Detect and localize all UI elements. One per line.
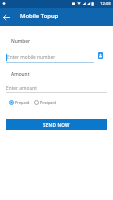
button[interactable]: Prepaid [6, 98, 32, 107]
staticText: SEND NOW [43, 122, 70, 128]
button[interactable]: Postpaid [33, 98, 57, 107]
button[interactable]: SEND NOW [6, 119, 107, 130]
staticText: Prepaid [15, 100, 30, 105]
staticText: Postpaid [40, 100, 56, 105]
staticText: Number [11, 38, 31, 45]
staticText: Mobile Topup [20, 12, 59, 20]
button[interactable]: Pick contact [95, 50, 106, 61]
staticText: Enter amount [6, 85, 38, 92]
staticText: Amount [11, 71, 30, 78]
staticText: Enter mobile number [7, 54, 56, 61]
staticText: 12:03 [100, 1, 111, 7]
button[interactable]: Back [0, 8, 13, 26]
